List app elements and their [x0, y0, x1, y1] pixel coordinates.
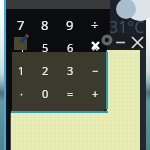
button[interactable]: +	[83, 82, 107, 104]
button[interactable]: −	[83, 59, 107, 81]
staticText: 0	[42, 86, 49, 101]
button[interactable]: 7	[9, 14, 33, 36]
button[interactable]: 4	[9, 36, 33, 58]
button[interactable]: Close	[129, 34, 146, 50]
staticText: ·	[20, 86, 23, 101]
staticText: 8	[41, 16, 49, 34]
staticText: 6	[67, 40, 74, 55]
button[interactable]: 1	[9, 59, 33, 81]
button[interactable]: 2	[33, 59, 57, 81]
button[interactable]: 8	[33, 14, 57, 36]
button[interactable]: 9	[58, 14, 82, 36]
staticText: 2	[42, 63, 49, 78]
staticText: 4	[18, 40, 25, 55]
staticText: +	[92, 86, 99, 101]
staticText: =	[67, 86, 74, 101]
button[interactable]: ×	[83, 36, 107, 58]
button[interactable]: 0	[33, 82, 57, 104]
staticText: ÷	[91, 16, 99, 34]
staticText: −	[92, 63, 99, 78]
button[interactable]: ÷	[83, 14, 107, 36]
staticText: 1	[18, 63, 25, 78]
button[interactable]: 6	[58, 36, 82, 58]
button[interactable]: ·	[9, 82, 33, 104]
staticText: 9	[66, 16, 74, 34]
button[interactable]: =	[58, 82, 82, 104]
button[interactable]: Settings	[100, 33, 114, 47]
button[interactable]: Clear	[89, 39, 102, 52]
button[interactable]: Minimize	[112, 34, 129, 50]
staticText: 7	[17, 16, 25, 34]
staticText: 31°C	[109, 16, 145, 38]
staticText: 3	[67, 63, 74, 78]
staticText: ×	[92, 40, 99, 55]
button[interactable]: 3	[58, 59, 82, 81]
staticText: 5	[42, 40, 49, 55]
button[interactable]: 5	[33, 36, 57, 58]
